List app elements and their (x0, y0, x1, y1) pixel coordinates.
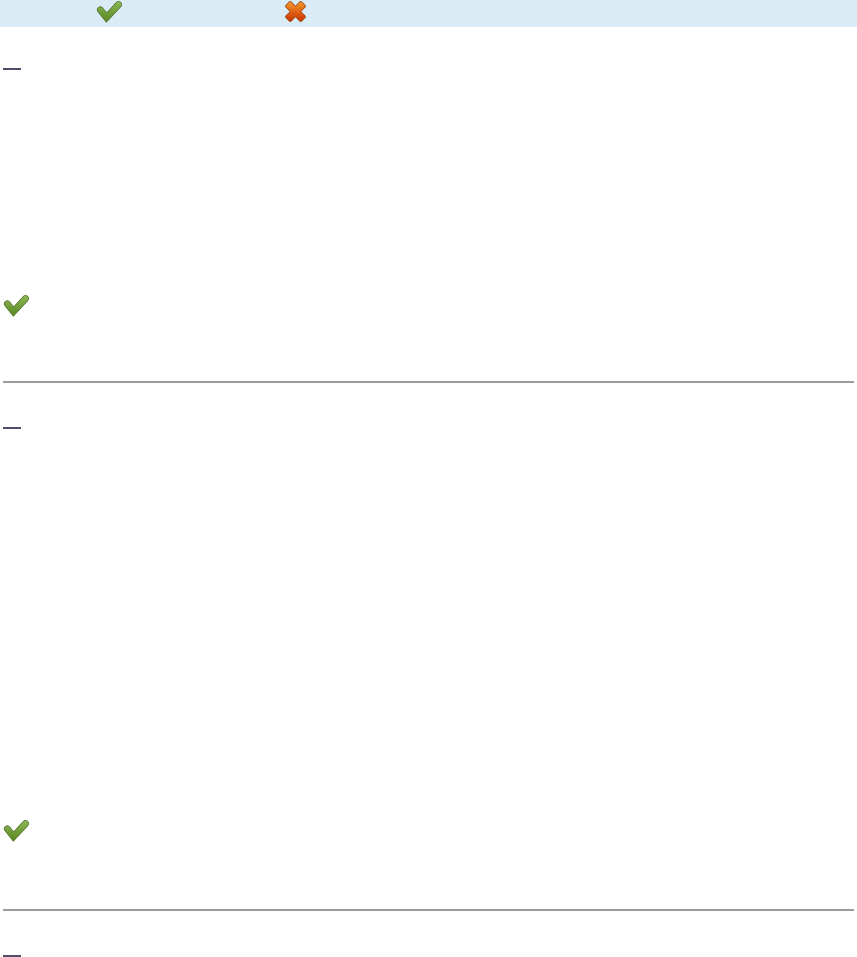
button[interactable]: Show incorrect answers (285, 1, 306, 22)
button[interactable]: Answer marked correct (4, 820, 29, 841)
button[interactable]: Show correct answers (97, 1, 122, 22)
button[interactable]: Answer marked correct (4, 295, 29, 316)
